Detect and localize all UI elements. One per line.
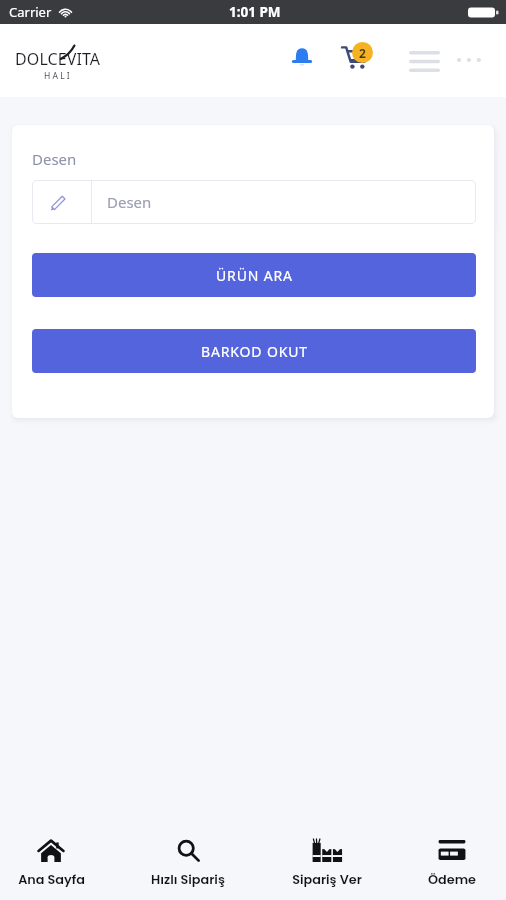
button[interactable]: Hızlı Sipariş — [133, 837, 243, 895]
staticText: Hızlı Sipariş — [151, 871, 225, 889]
staticText: 1:01 PM — [229, 3, 281, 21]
button[interactable]: Desen — [32, 180, 476, 224]
button[interactable]: Ana Sayfa — [0, 837, 106, 895]
staticText: Desen — [107, 192, 152, 212]
button[interactable]: ÜRÜN ARA — [32, 253, 476, 297]
staticText: DOLCEVITA — [15, 48, 101, 70]
button[interactable]: Sipariş Ver — [272, 837, 382, 895]
staticText: Ana Sayfa — [18, 871, 85, 889]
staticText: Ödeme — [428, 871, 476, 889]
button[interactable]: BARKOD OKUT — [32, 329, 476, 373]
staticText: Carrier — [9, 3, 52, 21]
staticText: BARKOD OKUT — [201, 342, 308, 361]
button[interactable]: Ödeme — [397, 837, 506, 895]
button[interactable]: Menu — [401, 41, 447, 81]
button[interactable]: More options — [449, 40, 489, 80]
staticText: Sipariş Ver — [292, 871, 362, 889]
staticText: ÜRÜN ARA — [216, 266, 293, 285]
staticText: 2 — [359, 45, 366, 61]
button[interactable]: Notifications — [282, 36, 322, 76]
staticText: Desen — [32, 149, 77, 169]
staticText: HALI — [44, 70, 72, 82]
button[interactable]: Shopping cart — [341, 37, 381, 77]
